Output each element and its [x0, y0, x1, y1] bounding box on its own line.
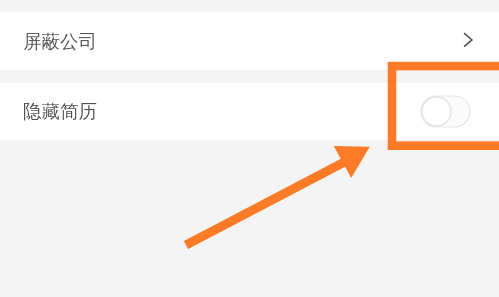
button[interactable]: 屏蔽公司	[0, 12, 499, 70]
button[interactable]: 隐藏简历	[0, 83, 499, 140]
button[interactable]: Open	[457, 26, 479, 56]
staticText: 隐藏简历	[23, 100, 97, 123]
staticText: 屏蔽公司	[23, 30, 97, 53]
button[interactable]: Hide resume toggle	[421, 96, 470, 127]
